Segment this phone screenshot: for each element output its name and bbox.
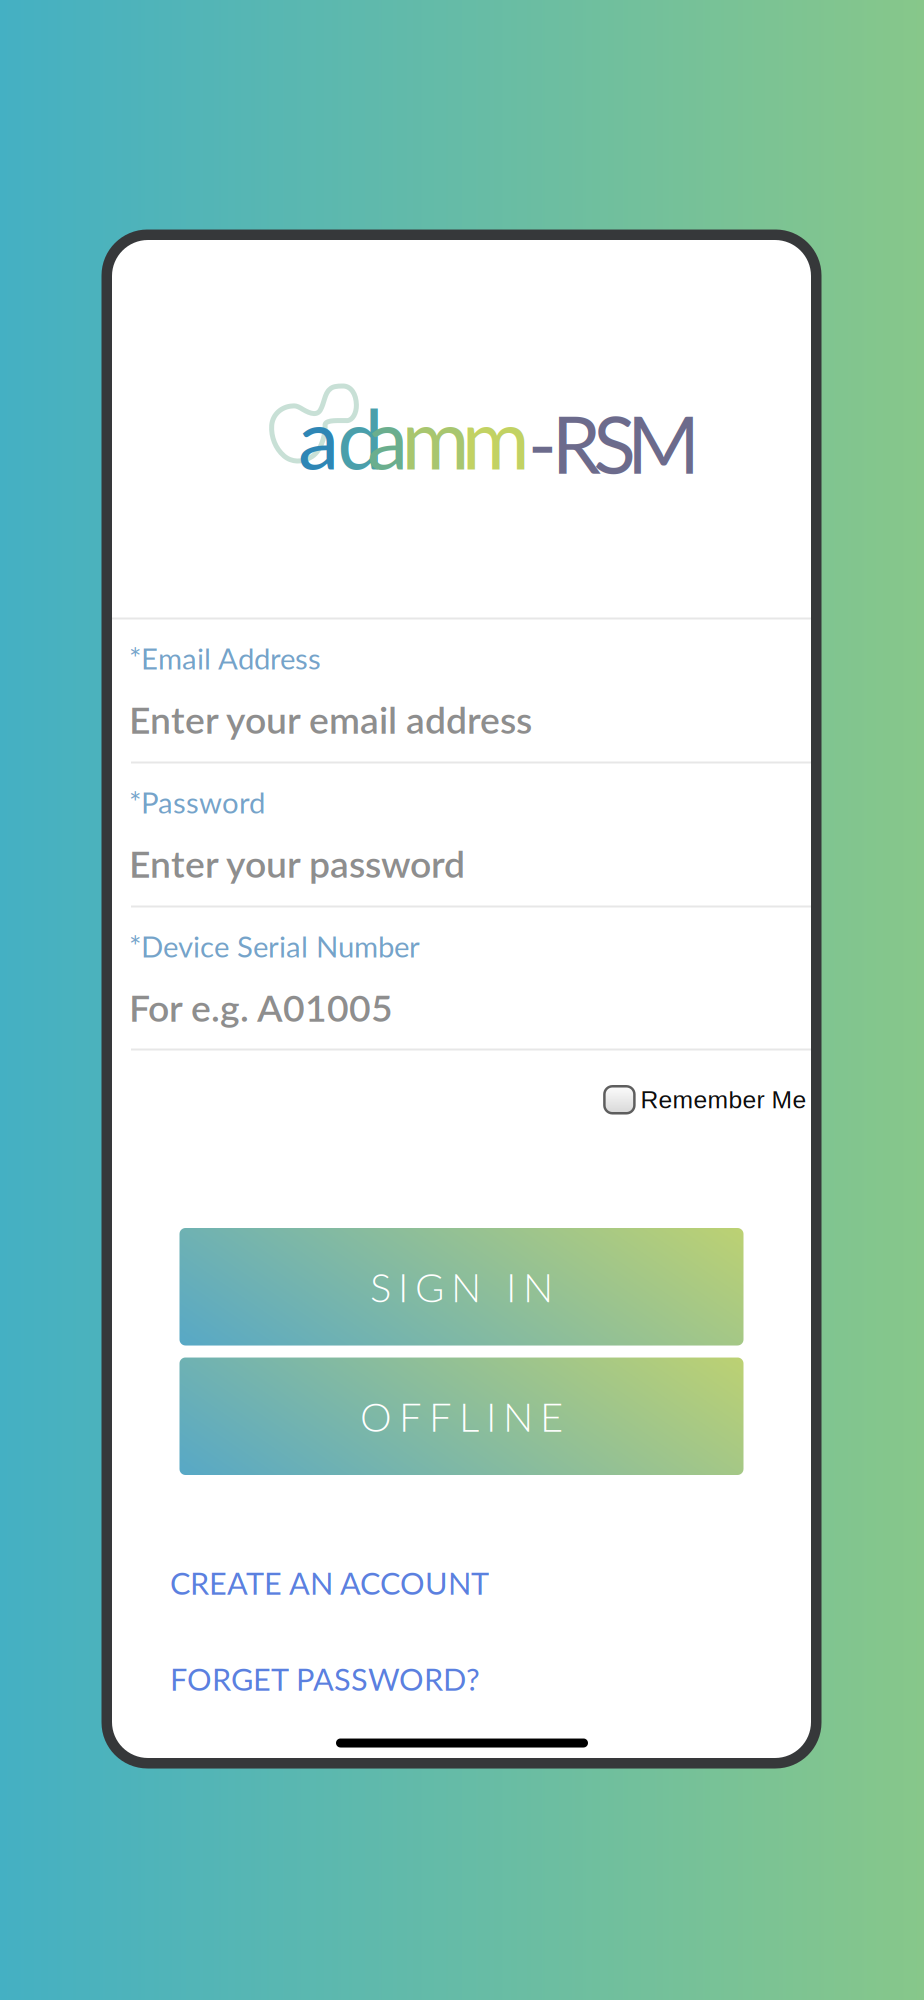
staticText: *Device Serial Number	[129, 928, 420, 964]
staticText: *Password	[129, 784, 265, 820]
staticText: OFFLINE	[360, 1392, 563, 1440]
staticText: -	[528, 396, 557, 491]
staticText: M	[627, 396, 700, 491]
staticText: d	[337, 388, 383, 487]
button[interactable]: CREATE AN ACCOUNT	[170, 1564, 489, 1601]
staticText: R	[552, 396, 601, 491]
staticText: a	[298, 388, 339, 487]
staticText: a	[367, 388, 408, 487]
staticText: m	[462, 388, 530, 487]
staticText: Enter your password	[129, 841, 465, 886]
staticText: S	[593, 396, 636, 491]
staticText: CREATE AN ACCOUNT	[170, 1564, 489, 1601]
staticText: For e.g. A01005	[129, 985, 393, 1030]
staticText: *Email Address	[129, 640, 321, 676]
staticText: SIGN IN	[370, 1263, 553, 1311]
staticText: FORGET PASSWORD?	[170, 1660, 480, 1697]
staticText: Enter your email address	[129, 697, 532, 742]
button[interactable]: SIGN IN	[179, 1228, 743, 1345]
staticText: m	[402, 388, 470, 487]
button[interactable]: Remember Me	[604, 1086, 806, 1114]
staticText: Remember Me	[640, 1086, 806, 1114]
button[interactable]: FORGET PASSWORD?	[170, 1660, 480, 1697]
button[interactable]: OFFLINE	[179, 1357, 743, 1475]
